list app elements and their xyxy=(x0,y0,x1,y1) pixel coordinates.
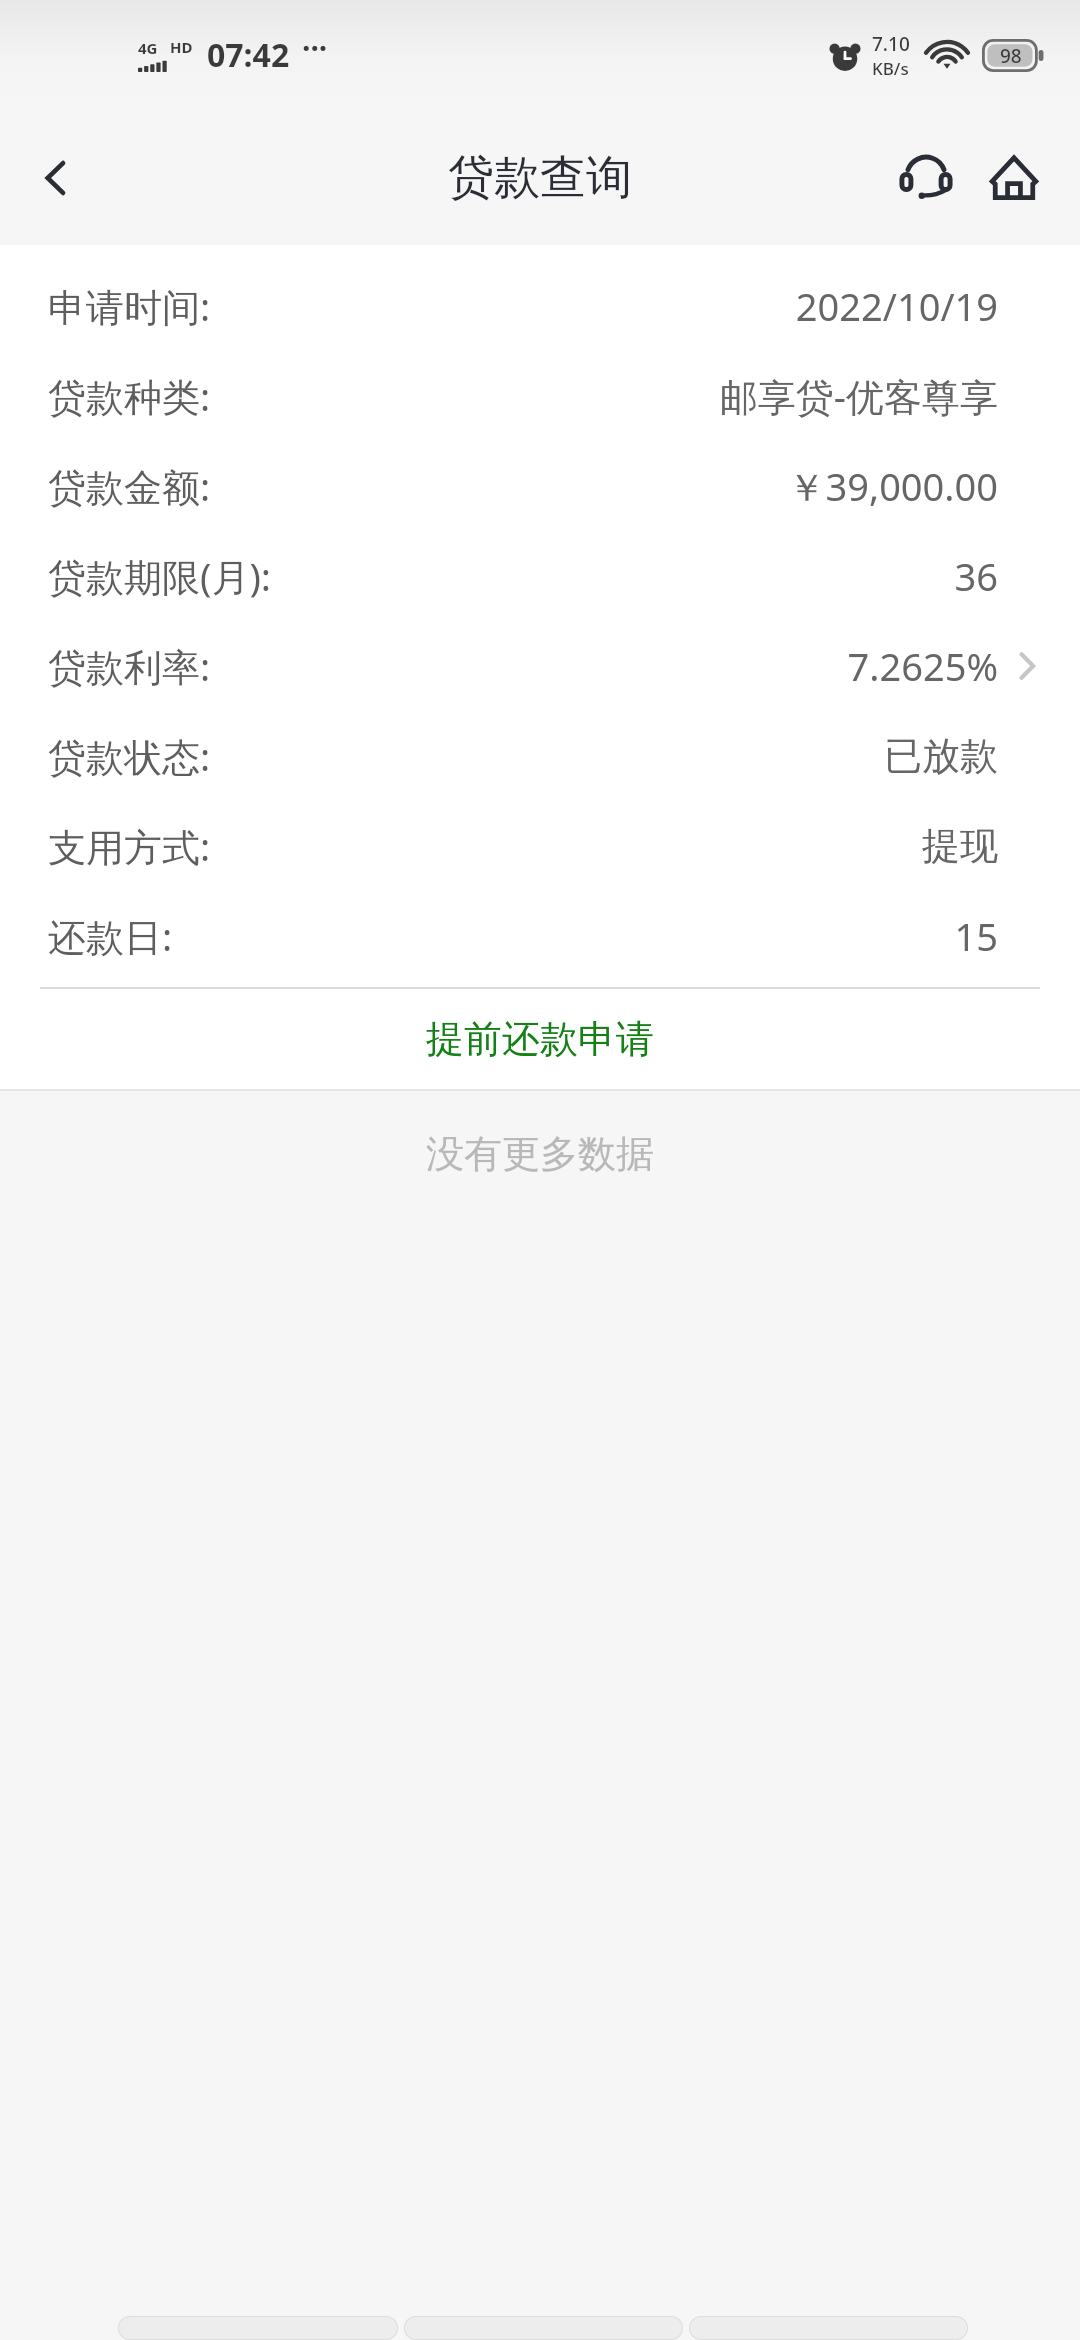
staticText: 邮享贷-优客尊享 xyxy=(719,370,998,422)
staticText: 07:42 xyxy=(207,33,290,77)
staticText: 15 xyxy=(954,910,998,962)
staticText: 7.10 xyxy=(872,31,910,57)
staticText: 4G xyxy=(138,38,158,58)
staticText: 提现 xyxy=(922,822,998,870)
staticText: 提前还款申请 xyxy=(426,1015,654,1063)
staticText: 贷款利率: xyxy=(48,640,211,692)
staticText: 申请时间: xyxy=(48,280,211,332)
button[interactable]: Navigation key xyxy=(689,2316,968,2340)
staticText: 支用方式: xyxy=(48,820,211,872)
button[interactable]: 还款日: xyxy=(0,891,1080,981)
staticText: 贷款状态: xyxy=(48,730,211,782)
staticText: 还款日: xyxy=(48,910,173,962)
button[interactable]: Navigation key xyxy=(118,2316,398,2340)
button[interactable]: 贷款期限(月): xyxy=(0,531,1080,621)
button[interactable]: 贷款金额: xyxy=(0,441,1080,531)
staticText: 36 xyxy=(954,550,998,602)
staticText: HD xyxy=(170,37,193,57)
button[interactable]: 申请时间: xyxy=(0,261,1080,351)
staticText: 贷款金额: xyxy=(48,460,211,512)
button[interactable]: Home xyxy=(970,134,1058,222)
button[interactable]: 提前还款申请 xyxy=(0,989,1080,1089)
staticText: 98 xyxy=(1000,43,1022,69)
button[interactable]: 支用方式: xyxy=(0,801,1080,891)
staticText: 2022/10/19 xyxy=(795,280,998,332)
staticText: 没有更多数据 xyxy=(426,1130,654,1178)
staticText: 贷款查询 xyxy=(448,149,632,207)
button[interactable]: 贷款种类: xyxy=(0,351,1080,441)
button[interactable]: Navigation key xyxy=(404,2316,683,2340)
staticText: 7.2625% xyxy=(847,640,998,692)
button[interactable]: Back xyxy=(8,130,104,226)
button[interactable]: 贷款利率: xyxy=(0,621,1080,711)
staticText: 已放款 xyxy=(884,732,998,780)
staticText: ￥39,000.00 xyxy=(787,460,998,512)
staticText: KB/s xyxy=(872,57,909,80)
staticText: 贷款期限(月): xyxy=(48,550,271,602)
button[interactable]: Customer service xyxy=(882,134,970,222)
staticText: ··· xyxy=(302,27,328,68)
staticText: 贷款种类: xyxy=(48,370,211,422)
button[interactable]: 贷款状态: xyxy=(0,711,1080,801)
